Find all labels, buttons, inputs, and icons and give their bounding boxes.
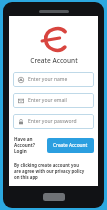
staticText: Have an Account? — [14, 136, 47, 148]
staticText: By clicking create account you are agree… — [14, 162, 86, 180]
button[interactable]: Have an Account? — [13, 136, 47, 154]
button[interactable]: Enter your password — [13, 114, 94, 129]
button[interactable]: Create Account — [47, 138, 94, 153]
staticText: Create Account — [30, 56, 78, 65]
staticText: Create Account — [53, 142, 88, 149]
staticText: Enter your name — [28, 76, 68, 83]
staticText: Enter your email — [28, 97, 67, 104]
button[interactable]: Enter your email — [13, 93, 94, 108]
other: Home — [43, 193, 65, 201]
staticText: Login — [14, 148, 27, 154]
button[interactable]: Enter your name — [13, 72, 94, 87]
staticText: Enter your password — [28, 118, 77, 125]
